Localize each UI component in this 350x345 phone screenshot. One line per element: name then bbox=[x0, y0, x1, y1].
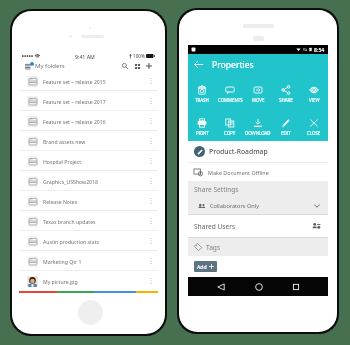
staticText: Brand assets new bbox=[43, 138, 86, 145]
button[interactable]: My picture.jpg bbox=[19, 271, 158, 291]
button[interactable]: Austin production stats bbox=[19, 231, 158, 251]
staticText: CLOSE bbox=[307, 130, 321, 136]
button[interactable]: EDIT bbox=[272, 118, 300, 136]
button[interactable]: COMMENTS bbox=[216, 85, 244, 103]
staticText: TRASH bbox=[195, 97, 209, 103]
staticText: My picture.jpg bbox=[43, 278, 78, 285]
staticText: Feature set – release 2015 bbox=[43, 78, 106, 85]
button[interactable]: More options bbox=[147, 195, 155, 207]
staticText: Marketing Qtr 1 bbox=[43, 258, 82, 265]
staticText: Make Document Offline bbox=[208, 169, 269, 176]
button[interactable]: Brand assets new bbox=[19, 131, 158, 151]
button[interactable]: Grid view bbox=[132, 61, 142, 71]
button[interactable]: VIEW bbox=[300, 85, 328, 103]
button[interactable]: Recents bbox=[277, 277, 314, 296]
button[interactable]: More options bbox=[147, 275, 155, 287]
button[interactable]: More options bbox=[147, 75, 155, 87]
staticText: Hospital Project bbox=[43, 158, 82, 165]
staticText: Release Notes bbox=[43, 198, 78, 205]
button[interactable]: Marketing Qtr 1 bbox=[19, 251, 158, 271]
button[interactable]: Add bbox=[144, 61, 154, 71]
button[interactable]: More options bbox=[147, 135, 155, 147]
staticText: Shared Users bbox=[194, 222, 236, 231]
button[interactable]: Expand bbox=[313, 202, 321, 210]
button[interactable]: COPY bbox=[216, 118, 244, 136]
staticText: PRINT bbox=[196, 130, 209, 136]
staticText: 8:54 bbox=[314, 46, 325, 53]
staticText: Collaborators Only bbox=[210, 202, 260, 210]
button[interactable]: More options bbox=[147, 95, 155, 107]
staticText: 100% bbox=[133, 53, 145, 59]
staticText: Graphics_USShow2018 bbox=[43, 178, 98, 185]
button[interactable]: Back bbox=[202, 277, 240, 296]
button[interactable]: Texas branch updates bbox=[19, 211, 158, 231]
staticText: Tags bbox=[206, 243, 221, 252]
staticText: Feature set – release 2017 bbox=[43, 98, 106, 105]
button[interactable]: Product-Roadmap bbox=[188, 141, 328, 162]
button[interactable]: Search bbox=[120, 61, 130, 71]
staticText: Product-Roadmap bbox=[209, 147, 268, 156]
staticText: COPY bbox=[224, 130, 236, 136]
button[interactable]: More options bbox=[147, 175, 155, 187]
button[interactable]: Home bbox=[240, 277, 277, 296]
staticText: Properties bbox=[212, 59, 254, 71]
button[interactable]: DOWNLOAD bbox=[244, 118, 272, 136]
staticText: SHARE bbox=[279, 97, 293, 103]
staticText: Add bbox=[197, 263, 207, 270]
staticText: COMMENTS bbox=[218, 97, 243, 103]
staticText: Austin production stats bbox=[43, 238, 100, 245]
button[interactable]: Shared Users bbox=[188, 215, 328, 237]
button[interactable]: More options bbox=[147, 235, 155, 247]
button[interactable]: Hospital Project bbox=[19, 151, 158, 171]
button[interactable]: More options bbox=[147, 115, 155, 127]
button[interactable]: Feature set – release 2016 bbox=[19, 111, 158, 131]
button[interactable]: More options bbox=[147, 255, 155, 267]
staticText: Share Settings bbox=[194, 185, 239, 194]
button[interactable]: TRASH bbox=[188, 85, 216, 103]
button[interactable]: Graphics_USShow2018 bbox=[19, 171, 158, 191]
staticText: DOWNLOAD bbox=[245, 130, 271, 136]
button[interactable]: SHARE bbox=[272, 85, 300, 103]
button[interactable]: Feature set – release 2015 bbox=[19, 71, 158, 91]
button[interactable]: Collaborators Only bbox=[188, 198, 328, 214]
staticText: Texas branch updates bbox=[43, 218, 96, 225]
staticText: Feature set – release 2016 bbox=[43, 118, 106, 125]
button[interactable]: Menu bbox=[23, 61, 35, 71]
staticText: 9:41 AM bbox=[75, 53, 95, 60]
staticText: MOVE bbox=[252, 97, 265, 103]
button[interactable]: Make Document Offline bbox=[188, 163, 328, 181]
button[interactable]: Back bbox=[192, 58, 205, 71]
button[interactable]: More options bbox=[147, 155, 155, 167]
button[interactable]: Add bbox=[194, 261, 217, 272]
button[interactable]: Feature set – release 2017 bbox=[19, 91, 158, 111]
staticText: EDIT bbox=[281, 130, 291, 136]
button[interactable]: Release Notes bbox=[19, 191, 158, 211]
button[interactable]: PRINT bbox=[188, 118, 216, 136]
button[interactable]: MOVE bbox=[244, 85, 272, 103]
staticText: VIEW bbox=[309, 97, 320, 103]
button[interactable]: More options bbox=[147, 215, 155, 227]
button[interactable]: CLOSE bbox=[300, 118, 328, 136]
staticText: My folders bbox=[35, 62, 65, 70]
